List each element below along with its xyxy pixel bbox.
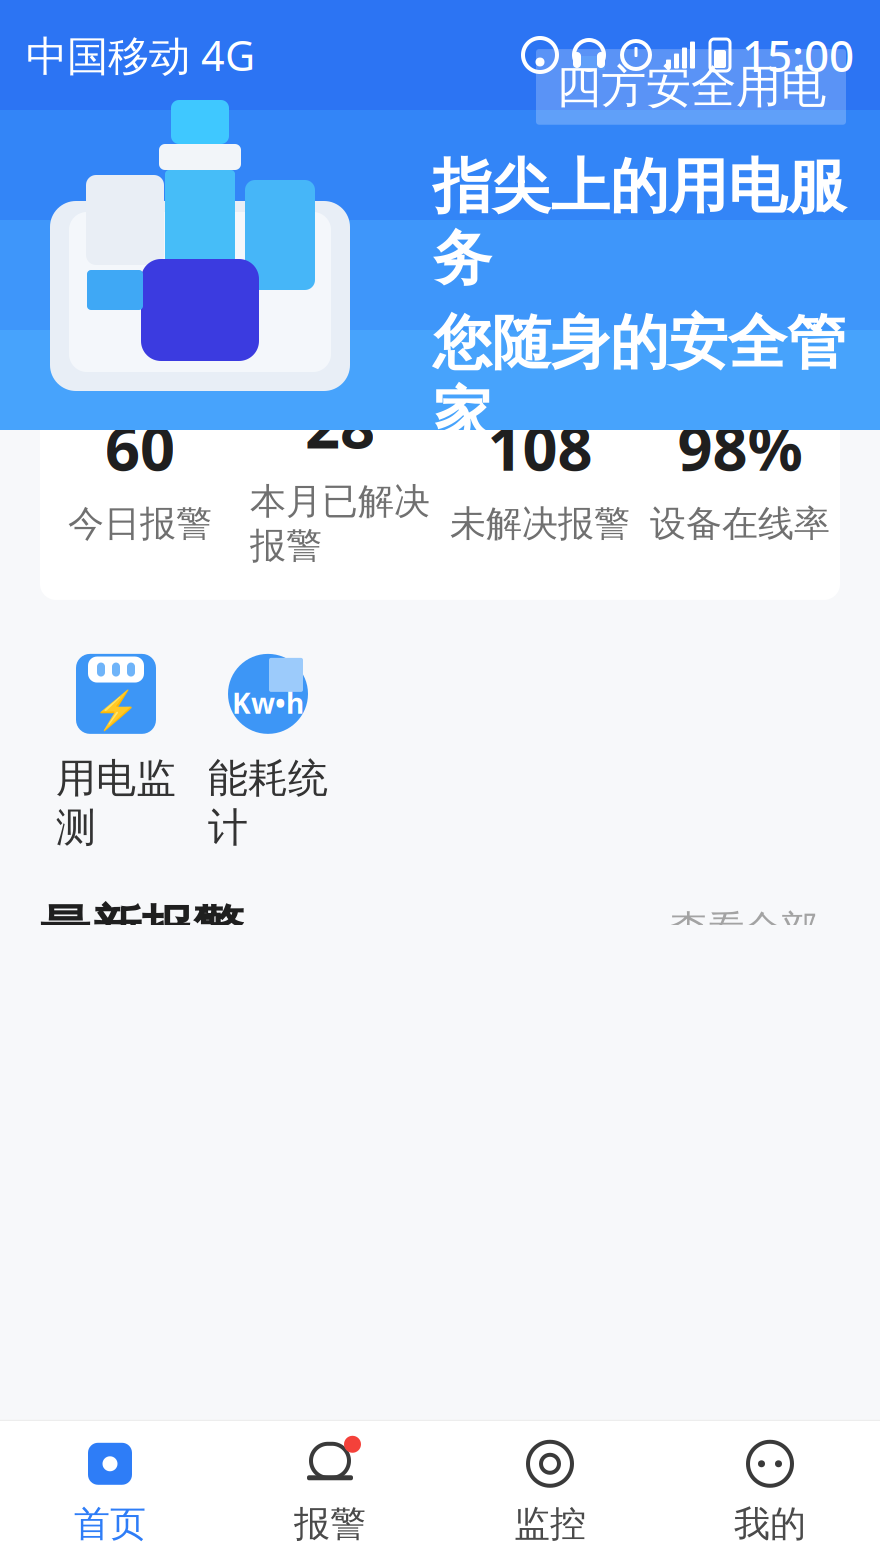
staticText: 28 — [305, 384, 375, 465]
staticText: 报警分布 — [40, 1372, 244, 1434]
button[interactable]: 98% — [640, 406, 840, 546]
staticText: 能耗统计 — [208, 754, 328, 852]
staticText: 首页 — [74, 1502, 146, 1546]
staticText: 108 — [487, 406, 592, 487]
button[interactable]: 我的 — [660, 1436, 880, 1546]
staticText: 未解决报警 — [450, 502, 630, 546]
staticText: 您随身的安全管家 — [433, 307, 846, 451]
button[interactable]: 首页 — [0, 1436, 220, 1546]
staticText: 98% — [677, 406, 802, 487]
staticText: 指尖上的用电服务 — [433, 151, 846, 295]
staticText: 11.1% — [706, 1538, 810, 1568]
staticText: ⚡ — [93, 689, 139, 731]
staticText: 我的 — [734, 1502, 806, 1546]
staticText: 15:00 — [731, 26, 854, 84]
button[interactable]: 108 — [440, 406, 640, 546]
button[interactable]: Kw•h — [192, 654, 344, 852]
staticText: 查看全部 — [670, 906, 818, 952]
staticText: 设备在线率 — [650, 502, 830, 546]
button[interactable]: 60 — [40, 406, 240, 546]
staticText: 短路报警 — [465, 1501, 613, 1547]
staticText: Kw•h — [232, 684, 304, 721]
staticText: 中国移动 4G — [26, 28, 255, 82]
staticText: 用电监测 — [56, 754, 176, 852]
staticText: 报警 — [294, 1502, 366, 1546]
button[interactable]: 报警 — [220, 1436, 440, 1546]
button[interactable]: 查看全部 — [670, 899, 840, 959]
staticText: 今日报警 — [68, 502, 212, 546]
staticText: 监控 — [514, 1502, 586, 1546]
staticText: 四方安全用电 — [556, 59, 826, 115]
staticText: 60 — [105, 406, 175, 487]
button[interactable]: 28 — [240, 384, 440, 568]
button[interactable]: 监控 — [440, 1436, 660, 1546]
staticText: 本月已解决报警 — [250, 479, 430, 568]
button[interactable]: ⚡ — [40, 654, 192, 852]
staticText: 11.1% — [706, 1499, 810, 1548]
staticText: 最新报警 — [40, 898, 244, 960]
staticText: 漏电报警 — [465, 1540, 613, 1568]
